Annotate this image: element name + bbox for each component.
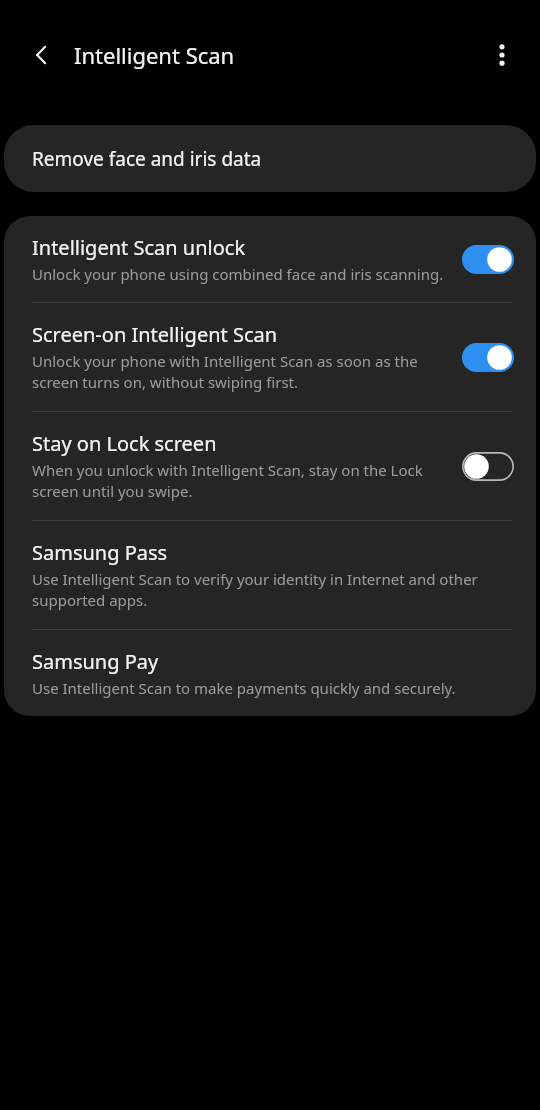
button[interactable]: Screen-on Intelligent Scan bbox=[460, 340, 516, 374]
button[interactable]: Navigate up bbox=[18, 31, 66, 79]
button[interactable]: Stay on Lock screen bbox=[4, 412, 536, 520]
staticText: Intelligent Scan bbox=[74, 40, 235, 70]
button[interactable]: Intelligent Scan unlock bbox=[460, 242, 516, 276]
staticText: Unlock your phone with Intelligent Scan … bbox=[32, 351, 448, 393]
staticText: Unlock your phone using combined face an… bbox=[32, 264, 444, 284]
staticText: Use Intelligent Scan to verify your iden… bbox=[32, 569, 496, 611]
button[interactable]: More options bbox=[478, 31, 526, 79]
button[interactable]: Stay on Lock screen bbox=[460, 449, 516, 483]
staticText: Use Intelligent Scan to make payments qu… bbox=[32, 678, 456, 698]
staticText: Samsung Pay bbox=[32, 648, 159, 675]
staticText: Samsung Pass bbox=[32, 539, 168, 566]
staticText: Remove face and iris data bbox=[32, 146, 262, 172]
button[interactable]: Samsung Pay bbox=[4, 630, 536, 716]
button[interactable]: Remove face and iris data bbox=[4, 125, 536, 192]
button[interactable]: Screen-on Intelligent Scan bbox=[4, 303, 536, 411]
staticText: When you unlock with Intelligent Scan, s… bbox=[32, 460, 448, 502]
staticText: Screen-on Intelligent Scan bbox=[32, 321, 278, 348]
button[interactable]: Samsung Pass bbox=[4, 521, 536, 629]
staticText: Intelligent Scan unlock bbox=[32, 234, 246, 261]
button[interactable]: Intelligent Scan unlock bbox=[4, 216, 536, 302]
staticText: Stay on Lock screen bbox=[32, 430, 217, 457]
